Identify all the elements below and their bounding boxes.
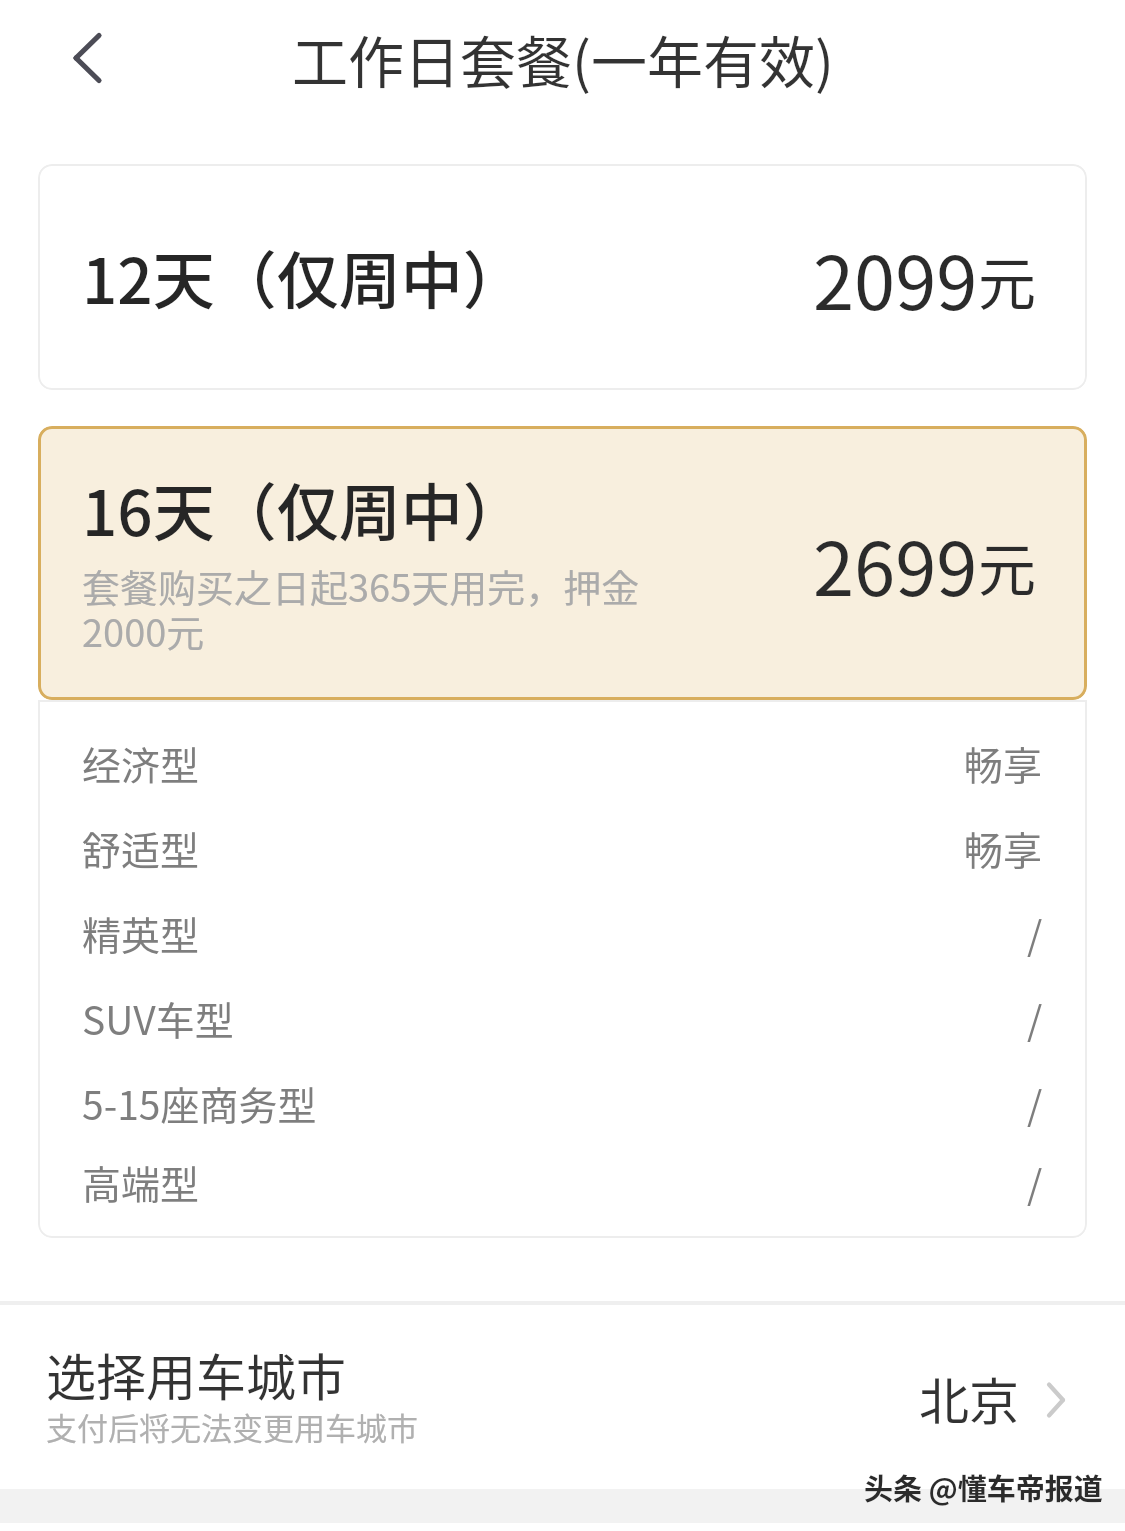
button[interactable]: 精英型	[82, 890, 1043, 975]
staticText: 元	[978, 524, 1037, 608]
button[interactable]: 16天（仅周中）	[38, 426, 1087, 700]
staticText: 经济型	[82, 735, 200, 791]
staticText: 16天（仅周中）	[82, 464, 525, 554]
staticText: 头条 @懂车帝报道	[864, 1466, 1103, 1508]
staticText: /	[1027, 990, 1043, 1046]
staticText: 5-15座商务型	[82, 1075, 317, 1131]
button[interactable]: SUV车型	[82, 975, 1043, 1060]
staticText: 舒适型	[82, 820, 200, 876]
button[interactable]: 12天（仅周中）	[38, 164, 1087, 390]
staticText: 北京	[919, 1362, 1019, 1434]
button[interactable]: Back	[42, 20, 118, 96]
staticText: /	[1027, 1075, 1043, 1131]
button[interactable]: 舒适型	[82, 805, 1043, 890]
staticText: 工作日套餐(一年有效)	[292, 18, 834, 99]
staticText: 支付后将无法变更用车城市	[46, 1404, 418, 1449]
button[interactable]: 选择用车城市	[0, 1305, 1125, 1475]
staticText: 高端型	[82, 1154, 200, 1210]
staticText: /	[1027, 1154, 1043, 1210]
button[interactable]: 5-15座商务型	[82, 1060, 1043, 1145]
staticText: 选择用车城市	[46, 1338, 346, 1410]
staticText: 精英型	[82, 905, 200, 961]
staticText: /	[1027, 905, 1043, 961]
staticText: 畅享	[964, 820, 1043, 876]
button[interactable]: 高端型	[82, 1145, 1043, 1218]
button[interactable]: 经济型	[82, 720, 1043, 805]
staticText: 畅享	[964, 735, 1043, 791]
staticText: SUV车型	[82, 990, 234, 1046]
staticText: 12天（仅周中）	[82, 232, 525, 322]
staticText: 套餐购买之日起365天用完，押金 2000元	[82, 558, 640, 658]
staticText: 2699	[813, 510, 978, 617]
staticText: 元	[978, 238, 1037, 322]
staticText: 2099	[813, 224, 978, 331]
